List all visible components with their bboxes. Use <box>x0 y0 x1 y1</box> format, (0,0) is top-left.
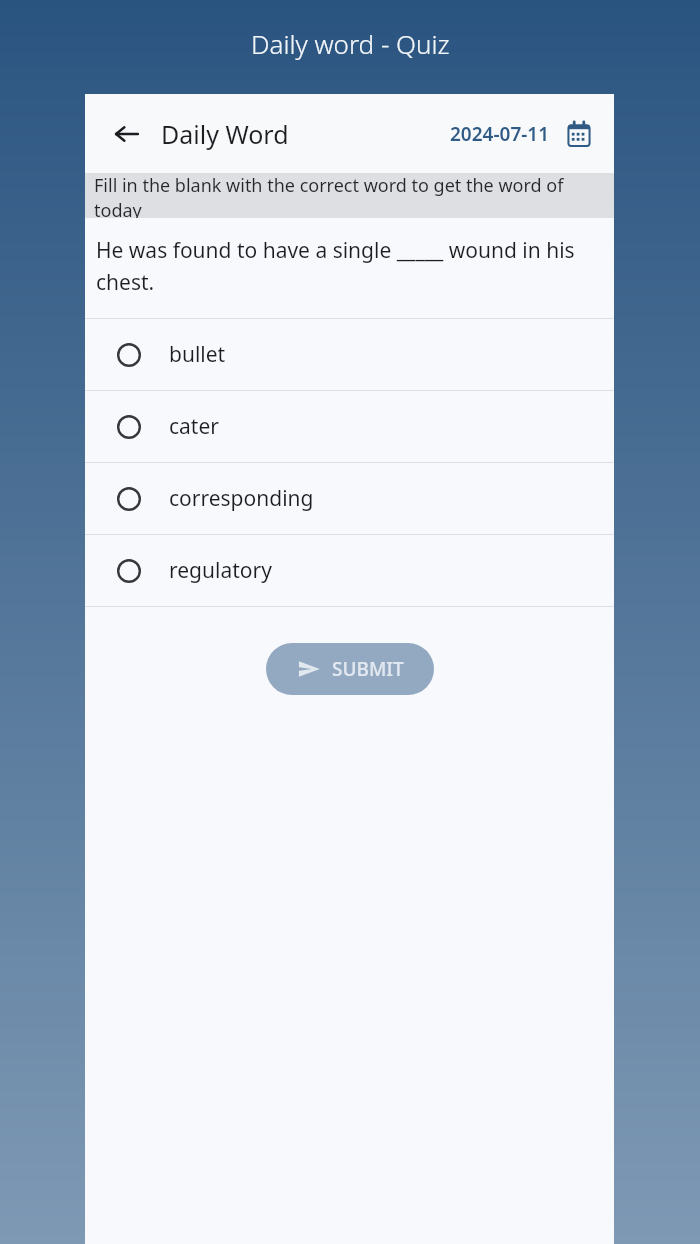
staticText: He was found to have a single _____ woun… <box>96 236 594 296</box>
button[interactable]: corresponding <box>85 463 614 534</box>
button[interactable]: bullet <box>85 319 614 390</box>
staticText: Fill in the blank with the correct word … <box>94 173 614 218</box>
button[interactable]: 2024-07-11 <box>450 119 594 149</box>
staticText: Daily Word <box>161 117 289 151</box>
staticText: cater <box>169 412 219 441</box>
staticText: SUBMIT <box>332 656 404 682</box>
button[interactable]: cater <box>85 391 614 462</box>
staticText: regulatory <box>169 556 272 585</box>
other: Pick date <box>564 119 594 149</box>
button[interactable]: regulatory <box>85 535 614 606</box>
button[interactable]: SUBMIT <box>266 643 434 695</box>
staticText: 2024-07-11 <box>450 121 550 147</box>
staticText: corresponding <box>169 484 314 513</box>
button[interactable]: Back <box>105 112 149 156</box>
staticText: bullet <box>169 340 226 369</box>
staticText: Daily word - Quiz <box>251 26 450 61</box>
